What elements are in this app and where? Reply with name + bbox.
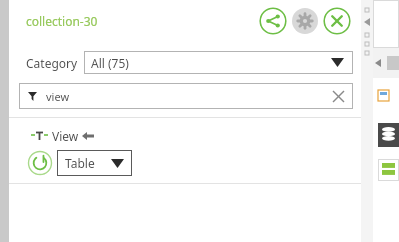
button[interactable]: All (75) — [84, 51, 353, 74]
button[interactable]: Settings — [291, 7, 319, 35]
button[interactable]: view — [19, 83, 353, 109]
button[interactable]: Share — [259, 7, 287, 35]
staticText: Table — [65, 155, 95, 171]
staticText: Category — [26, 55, 78, 71]
button[interactable]: Close — [323, 7, 351, 35]
button[interactable]: Refresh — [27, 150, 53, 176]
button[interactable]: Table — [57, 150, 132, 176]
staticText: View — [52, 128, 79, 144]
button[interactable]: Clear filter — [329, 87, 347, 105]
staticText: collection-30 — [26, 13, 98, 29]
staticText: view — [46, 89, 70, 104]
button[interactable]: View — [31, 128, 361, 144]
staticText: All (75) — [91, 55, 129, 71]
